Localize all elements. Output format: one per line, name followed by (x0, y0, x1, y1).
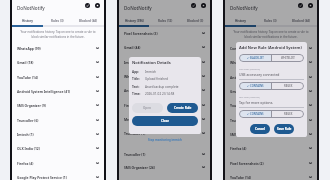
staticText: Pixel Screenshots (2) (230, 161, 264, 165)
button[interactable]: Truecaller (1) (119, 147, 210, 161)
staticText: Android System Intelligence (41) (17, 89, 71, 93)
staticText: Gmail (44) (124, 45, 141, 49)
button[interactable]: YouTube (14) (225, 98, 317, 112)
button[interactable]: Rules (12) (150, 12, 180, 25)
staticText: Rules (3) (264, 19, 277, 23)
staticText: YouTube (14) (17, 75, 38, 79)
button[interactable]: Pixel Screenshots (3) (119, 26, 210, 40)
staticText: Android System (5) (124, 88, 155, 92)
button[interactable]: Google Play Protect Service (1) (12, 170, 104, 180)
staticText: Upload finished (145, 77, 168, 81)
staticText: Com.android.systemui (8) (230, 46, 272, 50)
staticText: Truecaller (1) (124, 152, 146, 156)
button[interactable]: WhatsApp (99) (12, 41, 104, 55)
button[interactable]: Save Rule (274, 124, 294, 134)
button[interactable]: Com.android.systemui (8) (225, 41, 317, 55)
staticText: History (22, 19, 33, 23)
button[interactable]: Settings (307, 2, 314, 9)
button[interactable]: Cancel (250, 124, 270, 134)
button[interactable]: Gmail (44) (119, 40, 210, 54)
button[interactable]: Settings (200, 2, 207, 9)
button[interactable]: CONTAINS (239, 110, 271, 118)
button[interactable]: Truecaller (6) (225, 113, 317, 127)
button[interactable]: WhatsApp (99) (225, 55, 317, 69)
staticText: Create Rule (174, 106, 192, 110)
button[interactable]: Android System Intelligence (41) (12, 84, 104, 98)
button[interactable]: History (396) (119, 12, 150, 25)
staticText: REGEX (284, 84, 293, 88)
button[interactable]: Blocked (44) (286, 12, 317, 25)
staticText: Google Play Protect Service (1) (17, 175, 67, 179)
button[interactable]: Toggle notification listener (297, 2, 304, 9)
button[interactable]: SMS Organizer (9) (225, 127, 317, 141)
staticText: YouTube (14) (230, 175, 251, 179)
staticText: YouTube (14) (230, 103, 251, 107)
button[interactable]: Firefox (4) (12, 156, 104, 170)
button[interactable]: Truecaller (1) (119, 126, 210, 140)
staticText: DoNotNotify (230, 5, 258, 11)
staticText: Gmail (18) (17, 60, 34, 64)
staticText: OLX India (12) (17, 146, 40, 150)
button[interactable]: Stop monitoring immich (119, 138, 210, 142)
staticText: WhatsApp (7) (124, 74, 146, 78)
staticText: Text: (132, 85, 140, 89)
staticText: Truecaller (6) (17, 118, 39, 122)
button[interactable]: Toggle notification listener (84, 2, 91, 9)
button[interactable]: REGEX (272, 110, 304, 118)
staticText: Your notifications history. Tap on one t… (231, 30, 311, 39)
button[interactable]: Settings (94, 2, 101, 9)
button[interactable]: WhatsApp (7) (119, 69, 210, 83)
button[interactable]: Firefox (2) (119, 98, 210, 112)
staticText: DoNotNotify (17, 5, 45, 11)
button[interactable]: Create Rule (167, 103, 198, 113)
staticText: Save Rule (277, 127, 292, 131)
staticText: BLACKLIST (250, 56, 264, 60)
button[interactable]: Rules (3) (255, 12, 286, 25)
staticText: Blocked (44) (79, 19, 98, 23)
button[interactable]: History (225, 12, 255, 25)
button[interactable]: Android System (5) (119, 83, 210, 97)
button[interactable]: SMS Organizer (24) (119, 160, 210, 174)
button[interactable]: BLACKLIST (239, 54, 271, 62)
button[interactable]: Android System (12) (225, 70, 317, 84)
button[interactable]: Gmail (18) (225, 84, 317, 98)
staticText: Add New Rule (Android System) (239, 45, 302, 50)
staticText: Firefox (4) (17, 161, 34, 165)
staticText: WhatsApp (99) (17, 46, 41, 50)
button[interactable]: Pixel Screenshots (2) (225, 156, 317, 170)
button[interactable]: Messages (11) (119, 112, 210, 126)
staticText: SMS Organizer (9) (17, 103, 46, 107)
button[interactable]: Open (132, 103, 163, 113)
button[interactable]: REGEX (272, 82, 304, 90)
button[interactable]: YouTube (14) (12, 70, 104, 84)
staticText: Close (161, 119, 169, 123)
button[interactable]: Immich (2) (119, 55, 210, 69)
button[interactable]: CONTAINS (239, 82, 271, 90)
staticText: Tap for more options. (239, 100, 274, 105)
button[interactable]: Gmail (18) (12, 55, 104, 69)
button[interactable]: Toggle notification listener (190, 2, 197, 9)
button[interactable]: Firefox (4) (225, 141, 317, 155)
staticText: Title: (132, 77, 140, 81)
staticText: Title Filter (Optional) (239, 68, 260, 71)
staticText: CONTAINS (250, 112, 264, 116)
staticText: Rules (12) (158, 19, 173, 23)
button[interactable]: WHITELIST (272, 54, 304, 62)
staticText: REGEX (284, 112, 293, 116)
staticText: Truecaller (1) (124, 131, 146, 135)
button[interactable]: History (12, 12, 42, 25)
button[interactable]: Truecaller (6) (12, 113, 104, 127)
button[interactable]: Close (132, 116, 198, 126)
button[interactable]: OLX India (12) (12, 141, 104, 155)
button[interactable]: Imtech (1) (12, 127, 104, 141)
button[interactable]: Rules (3) (42, 12, 73, 25)
button[interactable]: SMS Organizer (9) (12, 98, 104, 112)
button[interactable]: Blocked (44) (73, 12, 104, 25)
staticText: Pixel Screenshots (3) (124, 31, 158, 35)
staticText: SMS Organizer (9) (230, 132, 259, 136)
button[interactable]: YouTube (14) (225, 170, 317, 180)
staticText: History (396) (125, 19, 144, 23)
staticText: Rules (3) (51, 19, 64, 23)
staticText: Time: (132, 92, 141, 96)
button[interactable]: Blocked (3) (180, 12, 210, 25)
